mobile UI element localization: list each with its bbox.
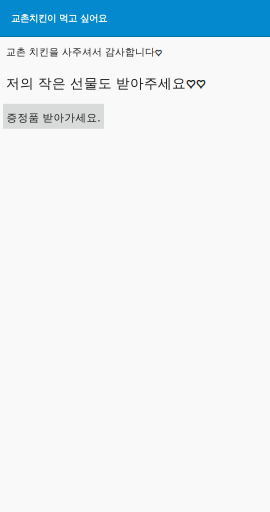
staticText: 교촌치킨이 먹고 싶어요 <box>11 13 107 24</box>
button[interactable]: 증정품 받아가세요. <box>3 104 104 129</box>
staticText: 증정품 받아가세요. <box>6 110 100 124</box>
staticText: 교촌 치킨을 사주셔서 감사합니다♡ <box>6 46 162 58</box>
staticText: 저의 작은 선물도 받아주세요♡♡ <box>6 75 206 92</box>
